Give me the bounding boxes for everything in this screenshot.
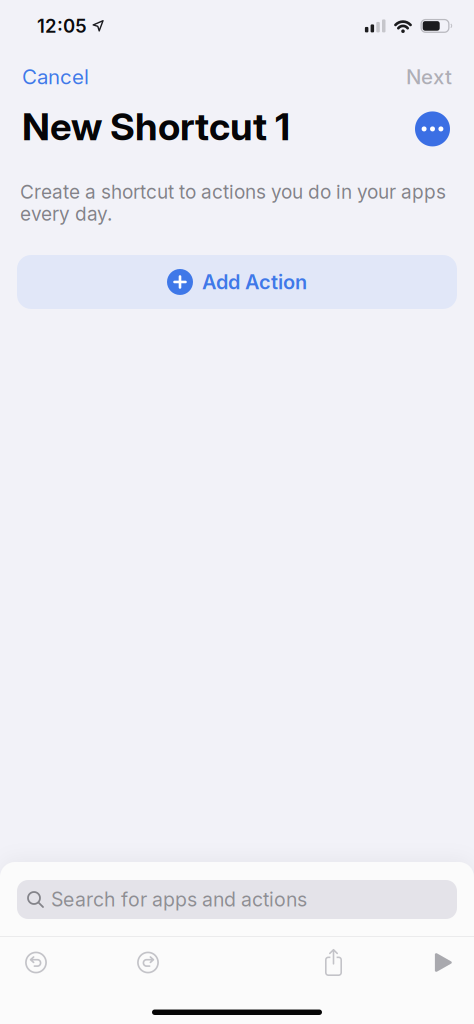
button[interactable]: More xyxy=(415,111,450,146)
button[interactable]: Redo xyxy=(137,951,159,973)
button[interactable]: Run Shortcut xyxy=(434,952,453,972)
staticText: Next xyxy=(406,65,452,89)
staticText: Search for apps and actions xyxy=(51,888,307,911)
button[interactable]: Search for apps and actions xyxy=(17,880,457,919)
staticText: Cancel xyxy=(22,65,89,89)
button[interactable]: Undo xyxy=(25,951,47,973)
staticText: Create a shortcut to actions you do in y… xyxy=(20,181,446,225)
staticText: 12:05 xyxy=(37,15,87,37)
button[interactable]: Next xyxy=(406,65,452,89)
button[interactable]: Share xyxy=(323,948,344,977)
button[interactable]: Cancel xyxy=(22,65,89,89)
staticText: New Shortcut 1 xyxy=(22,104,290,149)
staticText: Add Action xyxy=(202,270,307,294)
button[interactable]: Add Action xyxy=(17,255,457,309)
